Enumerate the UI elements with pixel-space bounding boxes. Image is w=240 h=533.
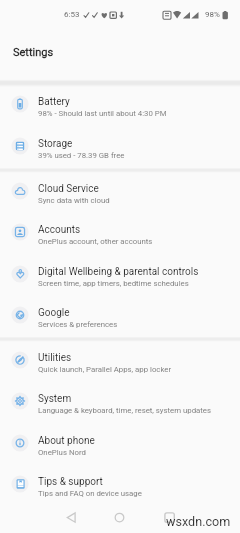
staticText: OnePlus Nord — [38, 448, 86, 457]
staticText: 98% — [205, 10, 220, 19]
staticText: Google — [38, 307, 70, 319]
staticText: Accounts — [38, 224, 81, 236]
staticText: 98% - Should last until about 4:30 PM — [38, 109, 167, 118]
staticText: Digital Wellbeing & parental controls — [38, 266, 199, 278]
staticText: Battery — [38, 96, 70, 108]
staticText: Language & keyboard, time, reset, system… — [38, 406, 212, 415]
button[interactable]: Cloud Service — [0, 170, 240, 212]
staticText: System — [38, 393, 72, 405]
staticText: About phone — [38, 435, 95, 447]
button[interactable]: System — [0, 380, 240, 422]
staticText: Utilities — [38, 352, 72, 364]
button[interactable]: Back — [55, 505, 87, 533]
button[interactable]: Utilities — [0, 339, 240, 381]
button[interactable]: Recent apps — [155, 505, 187, 533]
button[interactable]: Google — [0, 294, 240, 336]
staticText: Storage — [38, 138, 73, 150]
staticText: 39% used - 78.39 GB free — [38, 151, 125, 160]
staticText: Tips & support — [38, 476, 103, 488]
button[interactable]: Tips & support — [0, 463, 240, 505]
staticText: OnePlus account, other accounts — [38, 237, 153, 246]
button[interactable]: Battery — [0, 83, 240, 125]
staticText: Settings — [13, 46, 54, 59]
button[interactable]: About phone — [0, 422, 240, 464]
staticText: wsxdn.com — [166, 514, 231, 529]
button[interactable]: Digital Wellbeing & parental controls — [0, 253, 240, 295]
staticText: Quick launch, Parallel Apps, app locker — [38, 365, 172, 374]
staticText: Services & preferences — [38, 320, 118, 329]
button[interactable]: Accounts — [0, 211, 240, 253]
staticText: 6:53 — [64, 10, 80, 19]
staticText: Cloud Service — [38, 183, 99, 195]
staticText: Tips and FAQ on device usage — [38, 489, 142, 498]
button[interactable]: Storage — [0, 125, 240, 167]
staticText: Screen time, app timers, bedtime schedul… — [38, 279, 189, 288]
staticText: Sync data with cloud — [38, 196, 110, 205]
button[interactable]: Home — [103, 505, 135, 533]
